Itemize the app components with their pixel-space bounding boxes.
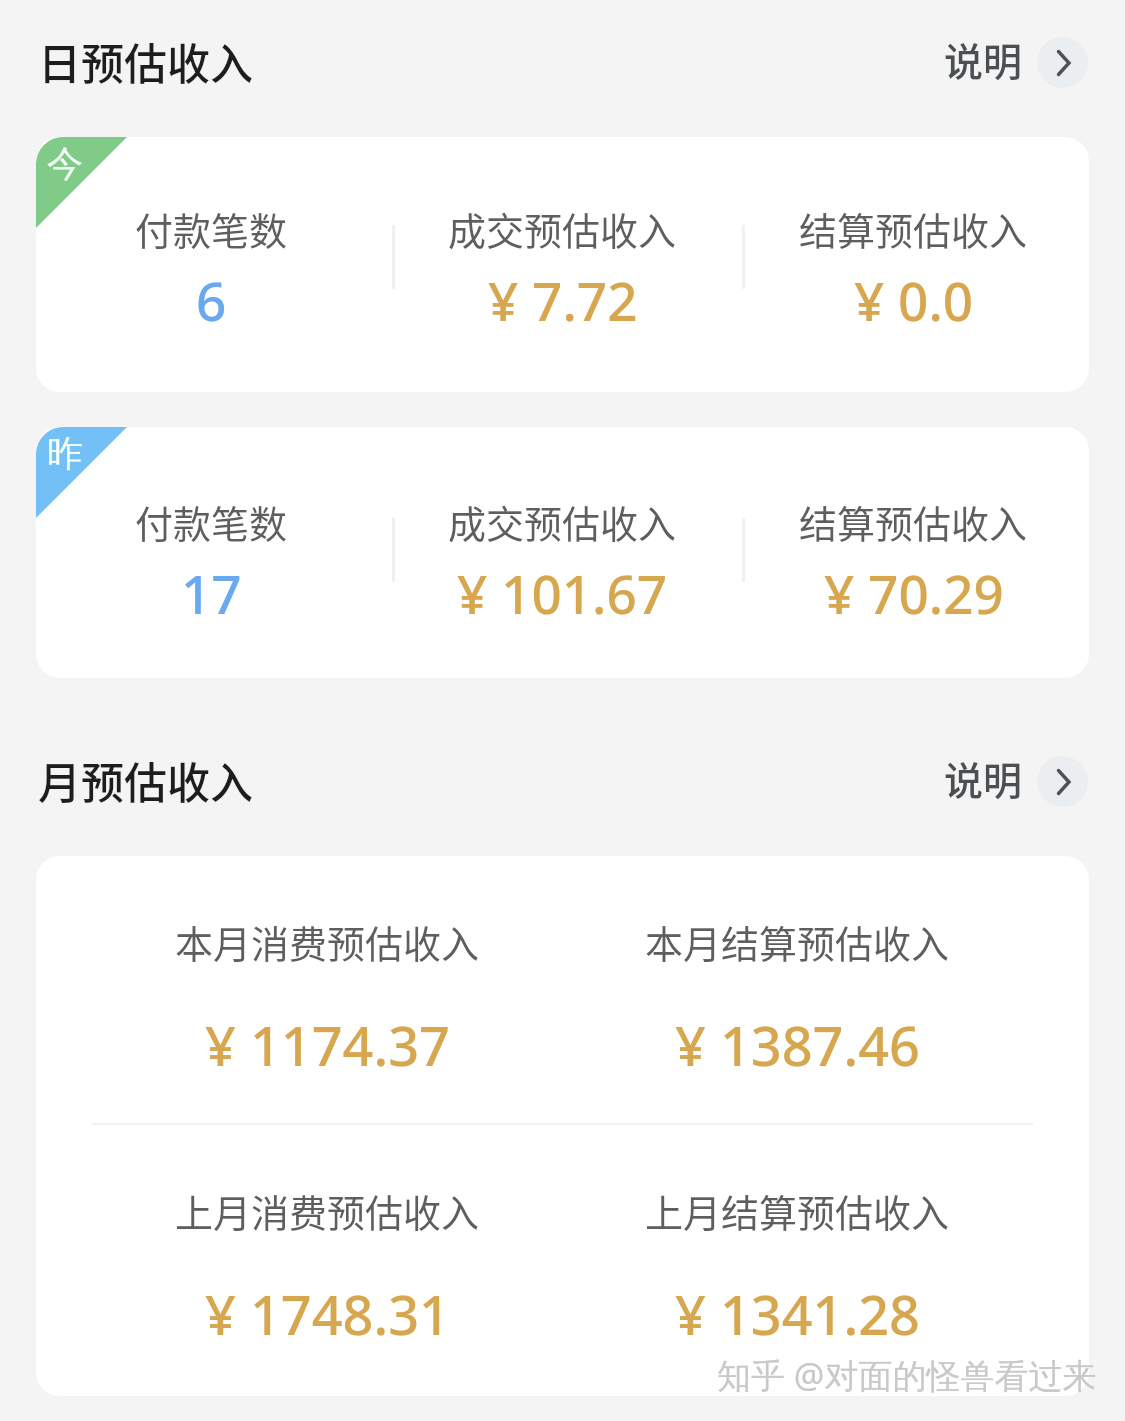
staticText: 上月消费预估收入 xyxy=(175,1183,480,1238)
staticText: 昨 xyxy=(47,431,83,476)
staticText: 17 xyxy=(181,557,242,629)
staticText: 6 xyxy=(196,264,227,336)
staticText: 知乎 @对面的怪兽看过来 xyxy=(717,1352,1097,1398)
button[interactable]: 说明 xyxy=(944,31,1088,87)
button[interactable]: 付款笔数 xyxy=(36,137,1089,392)
staticText: 本月消费预估收入 xyxy=(175,914,480,969)
staticText: ¥ 1387.46 xyxy=(675,1008,920,1082)
staticText: ¥ 70.29 xyxy=(824,557,1004,629)
staticText: ¥ 101.67 xyxy=(457,557,668,629)
staticText: 上月结算预估收入 xyxy=(645,1183,950,1238)
button[interactable]: 本月消费预估收入 xyxy=(36,856,1089,1396)
staticText: 今 xyxy=(47,141,83,186)
staticText: ¥ 0.0 xyxy=(854,264,974,336)
staticText: 月预估收入 xyxy=(38,749,253,811)
staticText: 说明 xyxy=(944,31,1023,87)
staticText: 说明 xyxy=(944,750,1023,806)
other: 说明 xyxy=(1037,37,1088,88)
staticText: 付款笔数 xyxy=(135,201,288,256)
staticText: 本月结算预估收入 xyxy=(645,914,950,969)
button[interactable]: 付款笔数 xyxy=(36,427,1089,678)
staticText: 成交预估收入 xyxy=(448,494,677,549)
staticText: ¥ 7.72 xyxy=(488,264,638,336)
staticText: 结算预估收入 xyxy=(799,494,1028,549)
button[interactable]: 说明 xyxy=(944,750,1088,806)
staticText: ¥ 1748.31 xyxy=(205,1277,450,1351)
staticText: 成交预估收入 xyxy=(448,201,677,256)
staticText: ¥ 1341.28 xyxy=(675,1277,920,1351)
staticText: 付款笔数 xyxy=(135,494,288,549)
other: 说明 xyxy=(1037,756,1088,807)
staticText: ¥ 1174.37 xyxy=(205,1008,450,1082)
staticText: 结算预估收入 xyxy=(799,201,1028,256)
staticText: 日预估收入 xyxy=(38,30,253,92)
